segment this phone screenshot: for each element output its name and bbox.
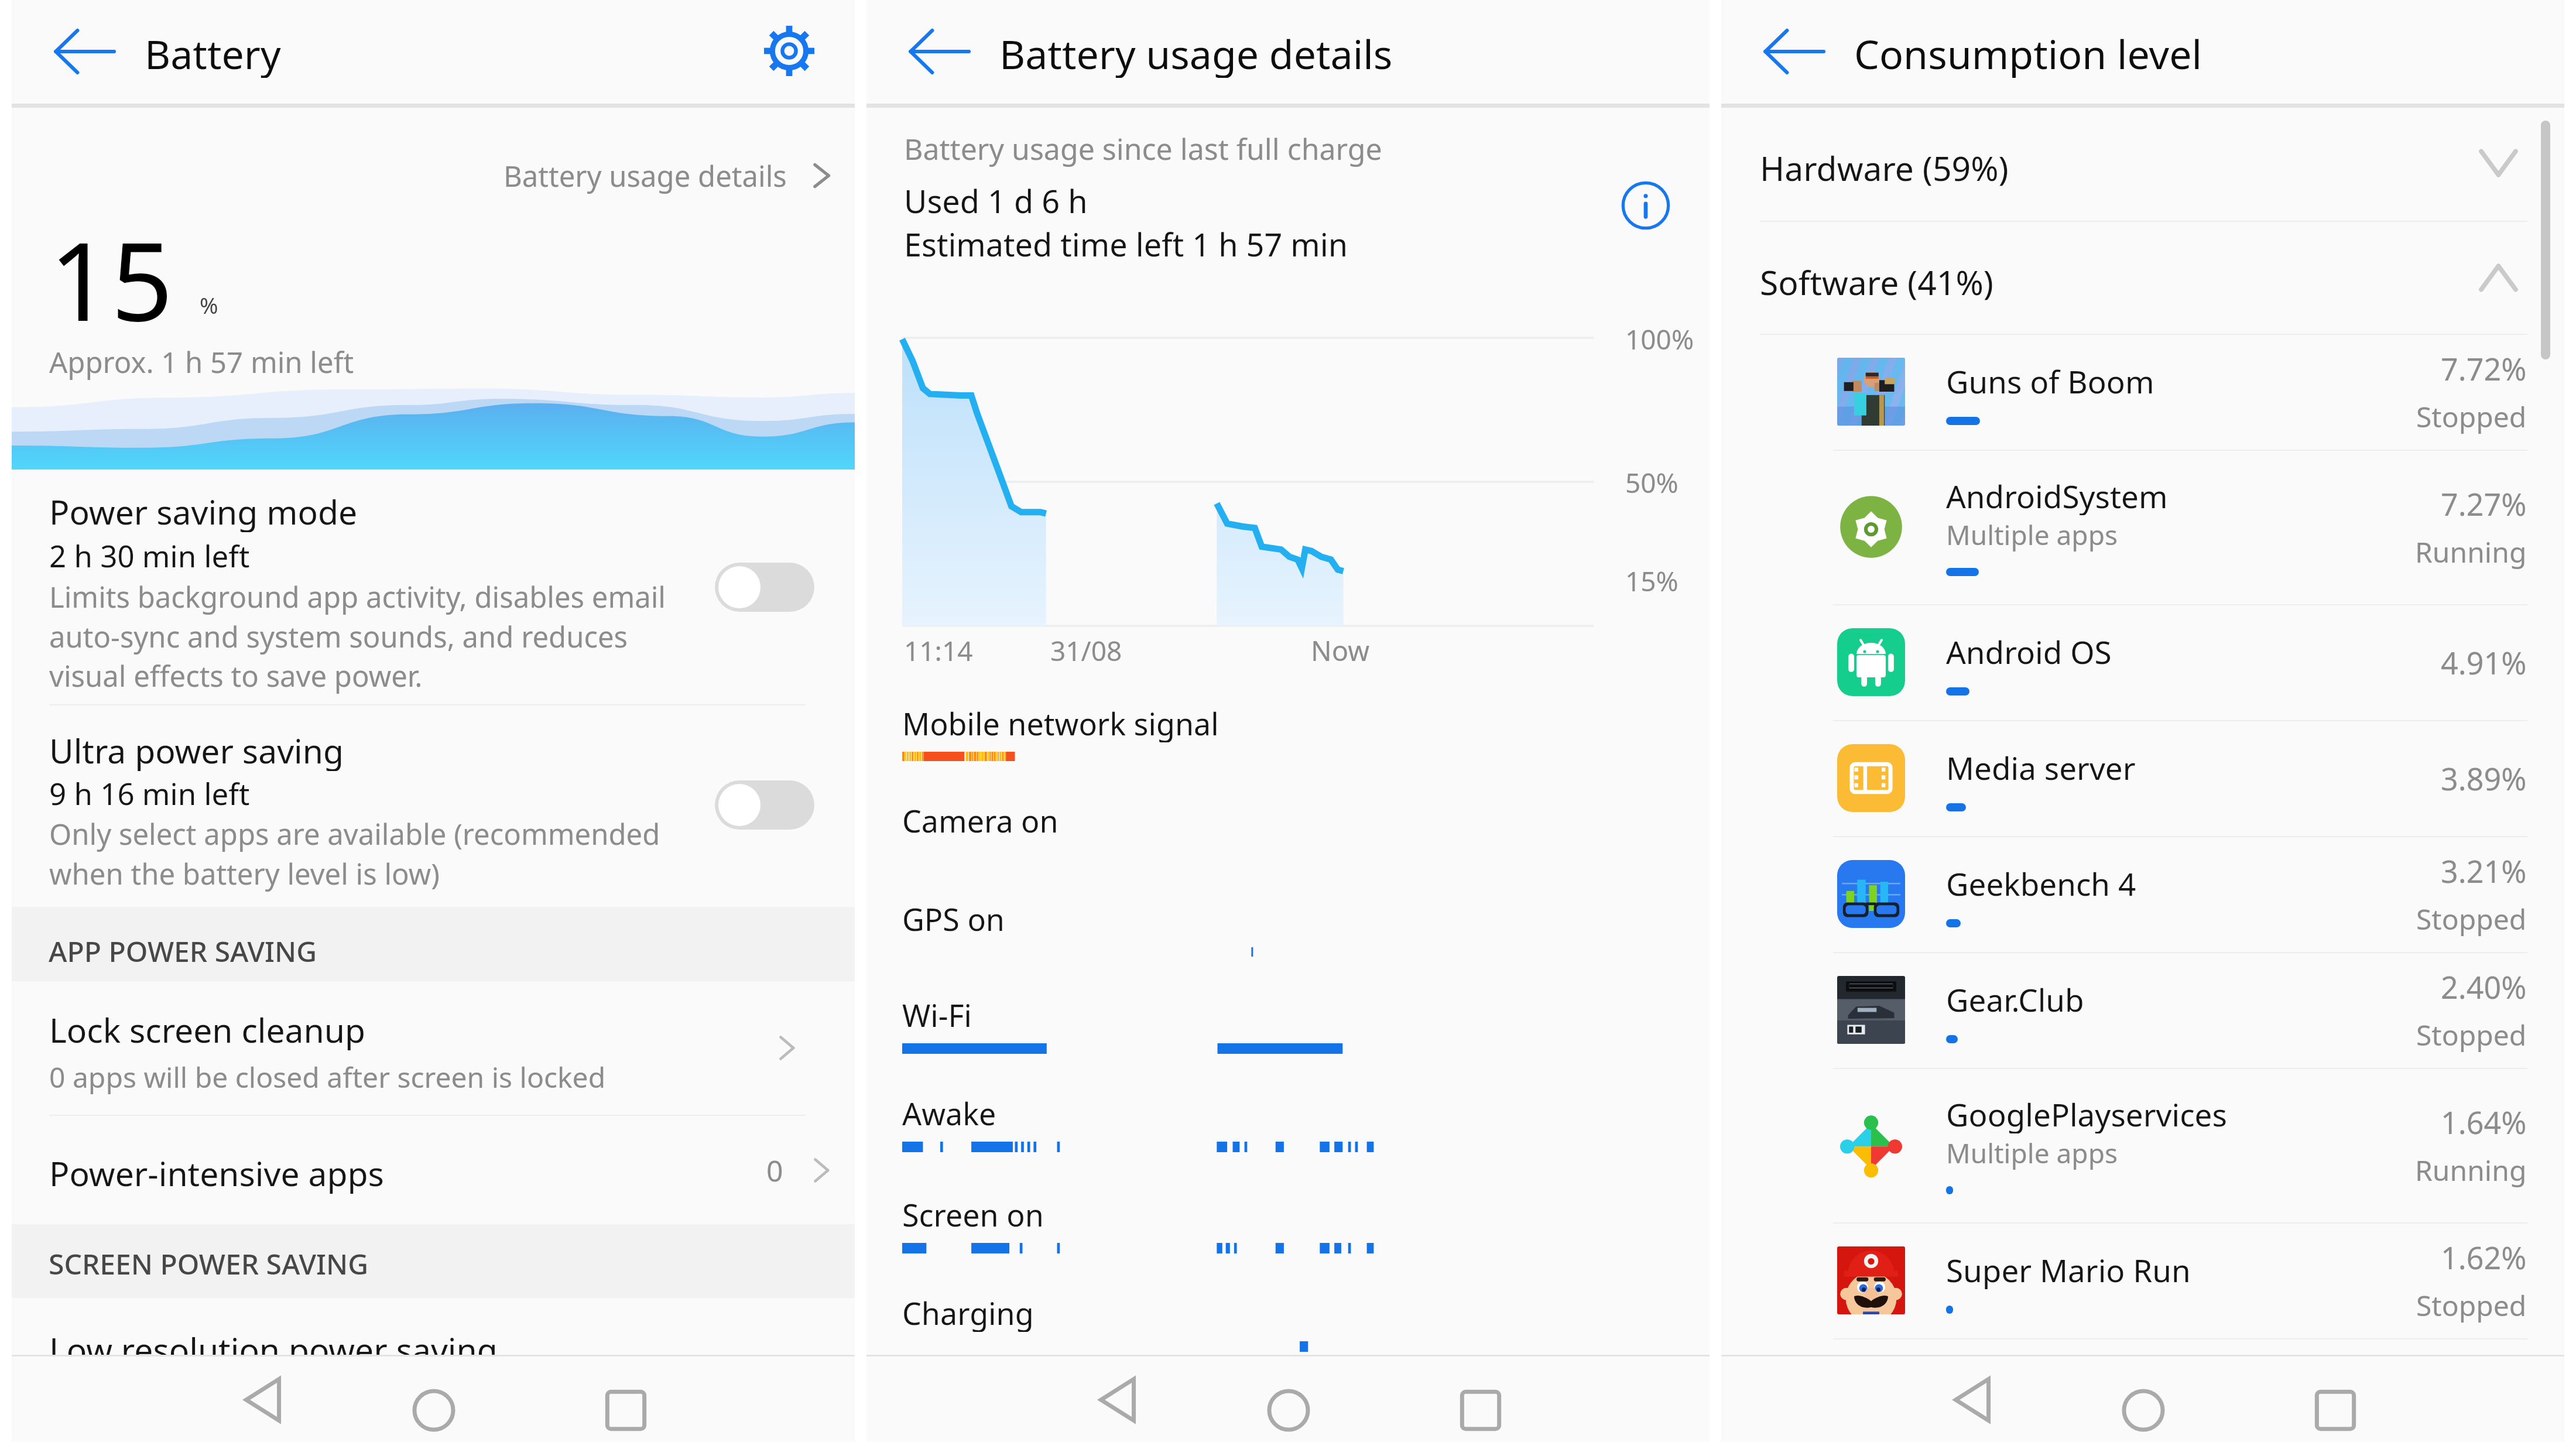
- staticText: Ultra power saving: [49, 728, 344, 771]
- button[interactable]: Back: [229, 1378, 295, 1422]
- staticText: Now: [1311, 632, 1370, 667]
- staticText: 100%: [1625, 321, 1694, 356]
- button[interactable]: [12, 1116, 855, 1224]
- staticText: Gear.Club: [1946, 978, 2084, 1019]
- staticText: Hardware (59%): [1760, 145, 2009, 189]
- staticText: Running: [2415, 533, 2527, 571]
- staticText: Consumption level: [1854, 26, 2202, 78]
- button[interactable]: [1721, 450, 2564, 604]
- staticText: 31/08: [1050, 632, 1122, 667]
- button[interactable]: Back: [1084, 1378, 1150, 1422]
- staticText: Awake: [902, 1092, 996, 1132]
- button[interactable]: Toggle: [715, 780, 814, 830]
- button[interactable]: Home: [1256, 1378, 1321, 1443]
- staticText: Charging: [902, 1292, 1034, 1332]
- staticText: 15: [49, 205, 173, 352]
- staticText: Multiple apps: [1946, 1135, 2118, 1170]
- staticText: 1.64%: [2441, 1101, 2527, 1143]
- staticText: Software (41%): [1760, 259, 1993, 303]
- button[interactable]: Info: [1621, 180, 1671, 231]
- staticText: 4.91%: [2441, 642, 2527, 683]
- staticText: Power saving mode: [49, 489, 358, 532]
- staticText: Running: [2415, 1151, 2527, 1189]
- button[interactable]: Back: [1939, 1378, 2005, 1422]
- staticText: GooglePlayservices: [1946, 1093, 2227, 1133]
- button[interactable]: [1721, 1222, 2564, 1338]
- staticText: Battery usage details: [503, 156, 787, 196]
- staticText: Only select apps are available (recommen…: [49, 814, 660, 893]
- button[interactable]: Back: [905, 18, 973, 85]
- button[interactable]: Recents: [2303, 1378, 2368, 1443]
- staticText: 0: [766, 1150, 783, 1190]
- button[interactable]: [1721, 836, 2564, 952]
- staticText: 3.89%: [2441, 758, 2527, 799]
- button[interactable]: Settings: [764, 26, 814, 76]
- staticText: Power-intensive apps: [49, 1150, 384, 1194]
- staticText: 1.62%: [2441, 1236, 2527, 1278]
- button[interactable]: [12, 981, 855, 1115]
- staticText: Stopped: [2416, 1286, 2527, 1324]
- button[interactable]: Home: [401, 1378, 467, 1443]
- staticText: Approx. 1 h 57 min left: [49, 342, 354, 380]
- staticText: Screen on: [902, 1194, 1044, 1234]
- button[interactable]: Home: [2111, 1378, 2176, 1443]
- staticText: 9 h 16 min left: [49, 773, 250, 811]
- staticText: 7.27%: [2441, 483, 2527, 525]
- button[interactable]: [12, 475, 855, 705]
- staticText: Battery usage details: [999, 26, 1393, 78]
- staticText: Wi-Fi: [902, 994, 972, 1034]
- staticText: %: [200, 290, 218, 318]
- staticText: Battery: [145, 26, 281, 78]
- staticText: Mobile network signal: [902, 703, 1219, 742]
- staticText: 7.72%: [2441, 348, 2527, 389]
- staticText: Android OS: [1946, 631, 2112, 671]
- button[interactable]: [1721, 720, 2564, 836]
- staticText: GPS on: [902, 898, 1005, 938]
- button[interactable]: Recents: [593, 1378, 659, 1443]
- button[interactable]: [1721, 222, 2564, 334]
- staticText: Guns of Boom: [1946, 360, 2154, 400]
- staticText: Media server: [1946, 746, 2136, 787]
- staticText: SCREEN POWER SAVING: [49, 1245, 369, 1281]
- staticText: 50%: [1625, 464, 1678, 499]
- staticText: 2.40%: [2441, 966, 2527, 1008]
- button[interactable]: Back: [1760, 18, 1828, 85]
- staticText: Lock screen cleanup: [49, 1007, 366, 1050]
- staticText: Camera on: [902, 800, 1059, 840]
- staticText: Limits background app activity, disables…: [49, 577, 666, 695]
- staticText: Battery usage since last full charge: [904, 129, 1382, 167]
- staticText: 11:14: [904, 632, 973, 667]
- button[interactable]: Toggle: [715, 563, 814, 612]
- staticText: Geekbench 4: [1946, 862, 2136, 903]
- button[interactable]: [1721, 952, 2564, 1068]
- button[interactable]: [1721, 1068, 2564, 1222]
- button[interactable]: [1721, 604, 2564, 720]
- button[interactable]: Recents: [1448, 1378, 1513, 1443]
- staticText: Stopped: [2416, 1016, 2527, 1054]
- staticText: Used 1 d 6 h: [904, 179, 1088, 220]
- staticText: Stopped: [2416, 398, 2527, 436]
- staticText: 3.21%: [2441, 850, 2527, 892]
- staticText: Estimated time left 1 h 57 min: [904, 222, 1348, 263]
- staticText: Stopped: [2416, 900, 2527, 938]
- staticText: APP POWER SAVING: [49, 932, 317, 968]
- staticText: Low resolution power saving: [49, 1327, 498, 1370]
- button[interactable]: [1721, 334, 2564, 450]
- staticText: 15%: [1625, 563, 1678, 598]
- button[interactable]: [1721, 108, 2564, 221]
- staticText: Multiple apps: [1946, 516, 2118, 551]
- button[interactable]: Battery usage details: [12, 124, 855, 227]
- staticText: AndroidSystem: [1946, 475, 2168, 515]
- staticText: 0 apps will be closed after screen is lo…: [49, 1058, 606, 1094]
- staticText: 2 h 30 min left: [49, 535, 250, 574]
- button[interactable]: [12, 706, 855, 899]
- staticText: Super Mario Run: [1946, 1249, 2191, 1289]
- button[interactable]: Back: [50, 18, 118, 85]
